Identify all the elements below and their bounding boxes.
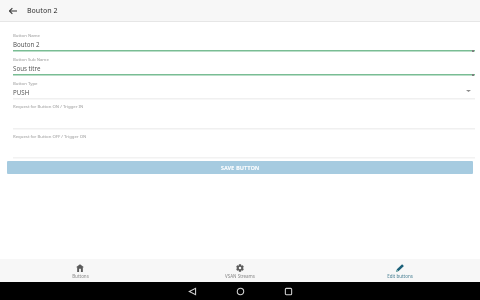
staticText: PUSH [13, 88, 30, 96]
button[interactable]: Edit buttons [320, 259, 480, 279]
button[interactable]: Buttons [0, 259, 160, 279]
button[interactable]: Select button type [462, 84, 474, 96]
button[interactable]: Back [185, 284, 199, 298]
staticText: Request for Button OFF / Trigger ON [13, 133, 87, 139]
staticText: Bouton 2 [13, 40, 40, 48]
button[interactable]: Home [233, 284, 247, 298]
staticText: VSAN Streams [225, 273, 255, 279]
staticText: Sous titre [13, 64, 41, 72]
staticText: Button Type [13, 80, 38, 86]
button[interactable]: Recent apps [281, 284, 295, 298]
staticText: Edit buttons [387, 273, 413, 279]
staticText: Bouton 2 [27, 6, 58, 16]
staticText: Button Sub Name [13, 56, 49, 62]
button[interactable]: Back [5, 3, 21, 19]
staticText: SAVE BUTTON [221, 164, 260, 171]
staticText: Buttons [72, 273, 89, 279]
button[interactable]: SAVE BUTTON [7, 161, 473, 174]
button[interactable]: VSAN Streams [160, 259, 320, 279]
staticText: Request for Button ON / Trigger IN [13, 103, 84, 109]
staticText: Button Name [13, 32, 41, 38]
